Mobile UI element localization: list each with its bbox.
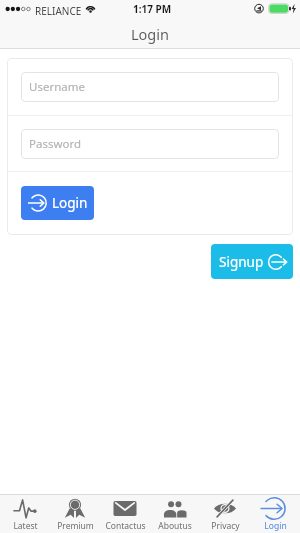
button[interactable]: Privacy	[200, 495, 250, 533]
button[interactable]: Aboutus	[150, 495, 200, 533]
button[interactable]: Login	[250, 495, 300, 533]
button[interactable]: Signup	[211, 244, 293, 279]
button[interactable]: Username	[21, 72, 279, 102]
staticText: Username	[29, 79, 85, 95]
button[interactable]: Password	[21, 129, 279, 159]
staticText: Password	[29, 136, 82, 152]
staticText: Aboutus	[158, 520, 192, 532]
button[interactable]: Premium	[50, 495, 100, 533]
staticText: Latest	[13, 520, 38, 532]
staticText: Premium	[57, 520, 94, 532]
button[interactable]: Latest	[0, 495, 50, 533]
staticText: Login	[52, 194, 88, 212]
staticText: RELIANCE	[35, 4, 82, 18]
staticText: Login	[131, 24, 169, 44]
staticText: Contactus	[105, 520, 146, 532]
staticText: Privacy	[211, 520, 240, 532]
button[interactable]: Contactus	[100, 495, 150, 533]
staticText: Login	[264, 520, 287, 532]
button[interactable]: Login	[21, 186, 94, 220]
staticText: 1:17 PM	[133, 2, 172, 16]
staticText: Signup	[219, 253, 264, 271]
